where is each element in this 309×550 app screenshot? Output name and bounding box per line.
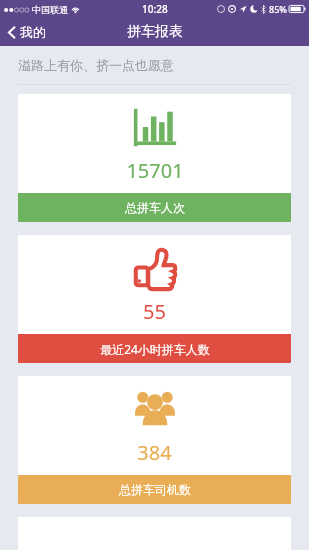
staticText: 中国联通 bbox=[32, 4, 68, 15]
staticText: 10:28 bbox=[142, 2, 168, 16]
staticText: 15701 bbox=[126, 157, 184, 184]
staticText: 溢路上有你、挤一点也愿意 bbox=[18, 57, 174, 73]
staticText: 拼车报表 bbox=[127, 23, 183, 41]
staticText: 85% bbox=[269, 3, 287, 15]
other: Thumbs up bbox=[131, 245, 179, 293]
staticText: 我的 bbox=[20, 24, 46, 40]
other: People bbox=[131, 386, 179, 434]
button[interactable]: 我的 bbox=[0, 18, 56, 46]
staticText: 384 bbox=[137, 439, 172, 466]
staticText: 最近24小时拼车人数 bbox=[100, 341, 210, 357]
button[interactable]: 溢路上有你、挤一点也愿意 bbox=[0, 46, 309, 84]
button[interactable]: Thumbs up bbox=[18, 235, 291, 363]
staticText: 总拼车人次 bbox=[125, 200, 185, 215]
staticText: 总拼车司机数 bbox=[119, 482, 191, 497]
button[interactable]: People bbox=[18, 376, 291, 504]
button[interactable]: Bar chart bbox=[18, 94, 291, 222]
other: Bar chart bbox=[131, 104, 179, 152]
staticText: 55 bbox=[143, 298, 166, 325]
